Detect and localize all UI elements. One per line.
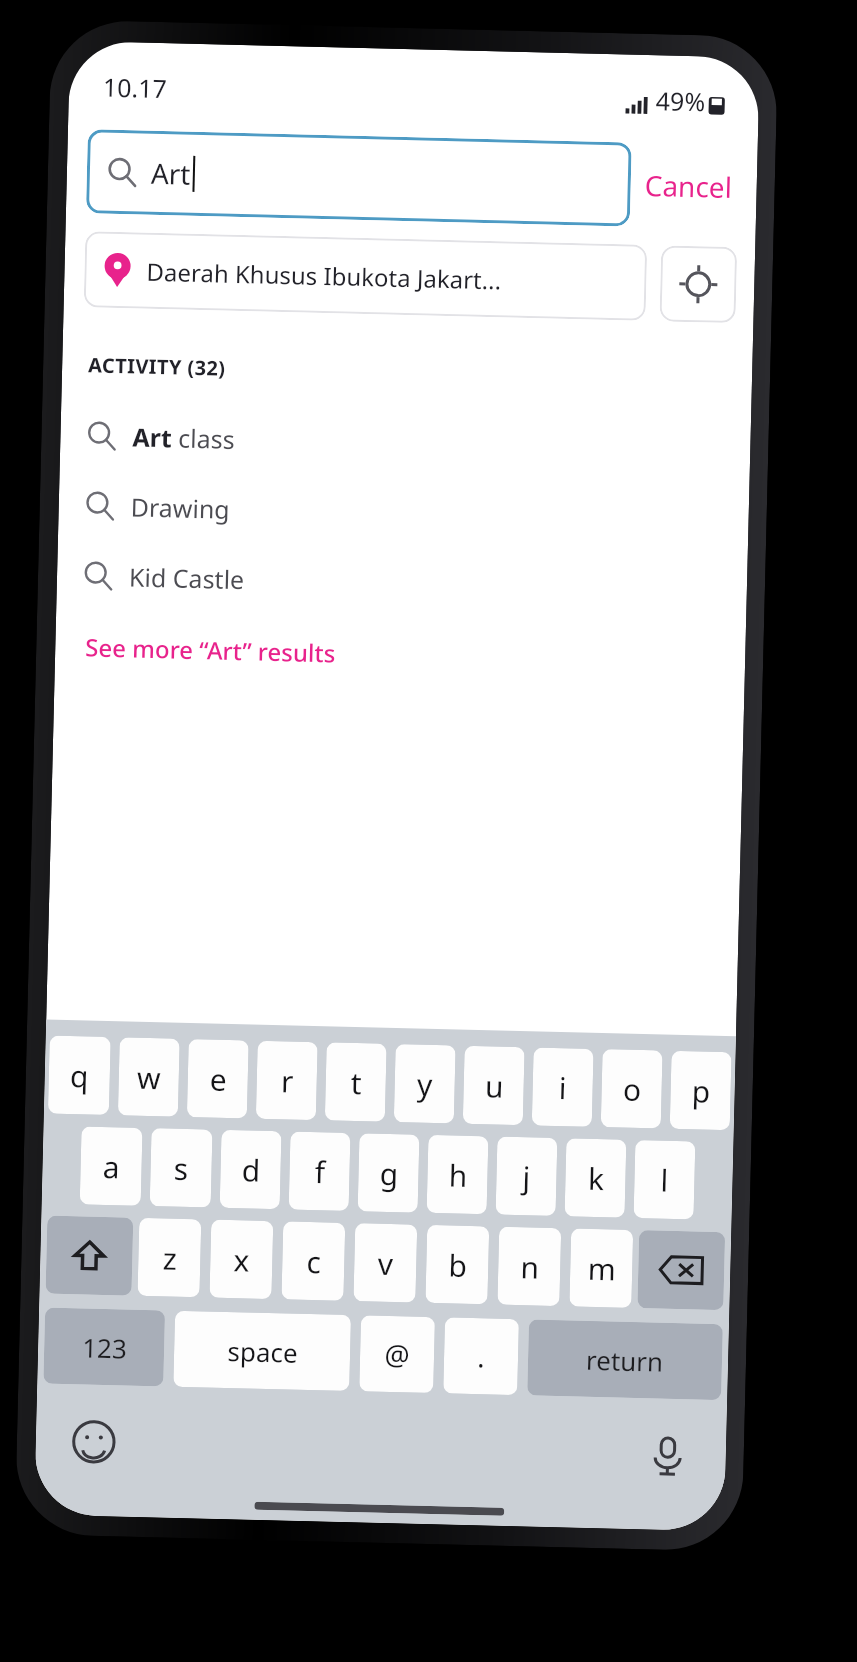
- button[interactable]: i: [532, 1047, 594, 1127]
- staticText: 49%: [655, 83, 706, 118]
- staticText: ACTIVITY (32): [88, 351, 226, 382]
- button[interactable]: h: [427, 1135, 488, 1214]
- staticText: f: [314, 1151, 326, 1192]
- staticText: p: [691, 1070, 711, 1112]
- button[interactable]: .: [443, 1317, 519, 1395]
- staticText: 10.17: [103, 70, 167, 105]
- staticText: z: [162, 1237, 178, 1279]
- button[interactable]: See more “Art” results: [85, 624, 337, 675]
- button[interactable]: x: [209, 1220, 273, 1299]
- button[interactable]: Cancel: [630, 156, 747, 216]
- button[interactable]: space: [173, 1311, 351, 1391]
- button[interactable]: b: [425, 1225, 489, 1304]
- button[interactable]: f: [289, 1131, 350, 1211]
- staticText: t: [350, 1062, 362, 1103]
- staticText: space: [227, 1333, 298, 1370]
- staticText: q: [69, 1055, 89, 1097]
- staticText: g: [379, 1153, 399, 1194]
- staticText: r: [280, 1060, 294, 1102]
- staticText: h: [448, 1154, 468, 1196]
- staticText: @: [384, 1335, 410, 1373]
- button[interactable]: v: [353, 1223, 417, 1303]
- staticText: Kid Castle: [129, 559, 245, 596]
- button[interactable]: l: [633, 1140, 695, 1219]
- button[interactable]: Drawing: [58, 470, 749, 556]
- button[interactable]: 123: [43, 1308, 165, 1386]
- staticText: d: [241, 1149, 261, 1191]
- button[interactable]: y: [394, 1044, 456, 1123]
- button[interactable]: d: [220, 1130, 281, 1209]
- staticText: c: [306, 1241, 322, 1282]
- button[interactable]: o: [601, 1049, 663, 1128]
- button[interactable]: u: [463, 1046, 525, 1125]
- button[interactable]: n: [497, 1227, 561, 1306]
- staticText: j: [522, 1156, 531, 1197]
- staticText: x: [233, 1239, 250, 1281]
- staticText: Cancel: [644, 166, 733, 206]
- staticText: l: [660, 1160, 669, 1201]
- button[interactable]: z: [137, 1218, 201, 1297]
- button[interactable]: Art class: [60, 400, 751, 486]
- staticText: Art class: [132, 419, 236, 456]
- staticText: m: [587, 1248, 617, 1289]
- button[interactable]: Dictation: [643, 1431, 692, 1480]
- button[interactable]: Use current location: [659, 245, 737, 323]
- button[interactable]: r: [256, 1041, 318, 1120]
- staticText: w: [136, 1057, 161, 1098]
- button[interactable]: q: [48, 1036, 111, 1115]
- button[interactable]: Art: [86, 129, 632, 227]
- button[interactable]: e: [187, 1039, 249, 1118]
- staticText: a: [102, 1146, 120, 1187]
- staticText: Art: [150, 154, 191, 193]
- button[interactable]: Shift: [45, 1216, 133, 1296]
- staticText: Drawing: [130, 489, 231, 526]
- button[interactable]: s: [150, 1128, 213, 1208]
- staticText: y: [416, 1064, 433, 1105]
- button[interactable]: Backspace: [637, 1230, 725, 1310]
- button[interactable]: w: [118, 1037, 180, 1117]
- staticText: .: [477, 1337, 485, 1375]
- staticText: Daerah Khusus Ibukota Jakart...: [146, 255, 502, 296]
- staticText: 123: [82, 1329, 128, 1366]
- button[interactable]: Daerah Khusus Ibukota Jakart...: [84, 231, 647, 321]
- staticText: i: [558, 1067, 567, 1108]
- staticText: u: [484, 1065, 504, 1107]
- button[interactable]: j: [495, 1137, 557, 1216]
- staticText: v: [377, 1243, 394, 1284]
- staticText: e: [209, 1058, 227, 1100]
- button[interactable]: return: [527, 1319, 723, 1400]
- button[interactable]: Emoji: [69, 1417, 118, 1466]
- button[interactable]: m: [569, 1228, 633, 1308]
- button[interactable]: p: [670, 1051, 732, 1130]
- button[interactable]: @: [359, 1315, 435, 1393]
- staticText: k: [587, 1158, 605, 1199]
- button[interactable]: c: [281, 1221, 345, 1301]
- button[interactable]: Kid Castle: [56, 540, 748, 626]
- staticText: See more “Art” results: [85, 630, 337, 669]
- staticText: b: [448, 1244, 468, 1286]
- button[interactable]: a: [80, 1126, 143, 1206]
- staticText: n: [520, 1246, 540, 1288]
- staticText: return: [586, 1342, 664, 1379]
- button[interactable]: k: [564, 1138, 626, 1218]
- staticText: o: [622, 1069, 642, 1110]
- button[interactable]: t: [325, 1042, 387, 1122]
- staticText: s: [173, 1148, 189, 1189]
- button[interactable]: g: [358, 1133, 419, 1213]
